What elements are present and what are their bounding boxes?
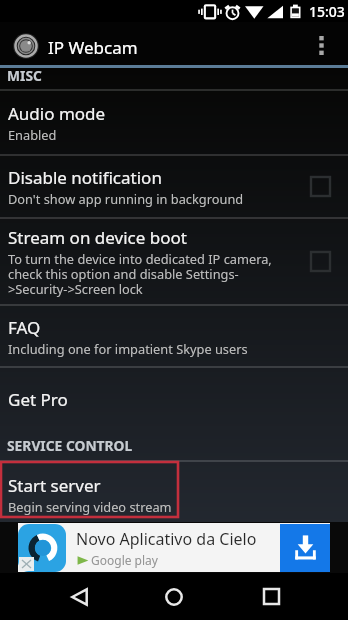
- button[interactable]: Recents: [245, 573, 297, 620]
- staticText: Novo Aplicativo da Cielo: [76, 528, 257, 550]
- button[interactable]: Start server: [0, 462, 348, 526]
- staticText: Enabled: [8, 126, 57, 143]
- staticText: IP Webcam: [48, 36, 138, 59]
- button[interactable]: Close ad: [18, 523, 330, 572]
- staticText: SERVICE CONTROL: [7, 436, 133, 455]
- button[interactable]: Install: [280, 524, 330, 572]
- button[interactable]: Home: [148, 573, 200, 620]
- button[interactable]: Disable notification: [0, 156, 348, 217]
- button[interactable]: Close ad: [19, 557, 34, 571]
- button[interactable]: Get Pro: [0, 368, 348, 431]
- staticText: MISC: [7, 66, 42, 85]
- button[interactable]: Stream on device boot: [0, 219, 348, 304]
- staticText: 15:03: [309, 2, 345, 21]
- staticText: Start server: [8, 474, 101, 497]
- button[interactable]: Back: [53, 573, 105, 620]
- button[interactable]: More options: [300, 22, 348, 65]
- staticText: Audio mode: [8, 102, 106, 125]
- button[interactable]: FAQ: [0, 306, 348, 366]
- staticText: Begin serving video stream: [8, 498, 172, 515]
- staticText: Get Pro: [8, 388, 68, 411]
- staticText: Disable notification: [8, 166, 162, 189]
- button[interactable]: Audio mode: [0, 91, 348, 154]
- staticText: Google play: [91, 552, 158, 568]
- staticText: Stream on device boot: [8, 226, 187, 249]
- staticText: To turn the device into dedicated IP cam…: [8, 250, 272, 298]
- staticText: Including one for impatient Skype users: [8, 340, 248, 357]
- staticText: FAQ: [8, 316, 41, 339]
- staticText: Don't show app running in background: [8, 190, 244, 207]
